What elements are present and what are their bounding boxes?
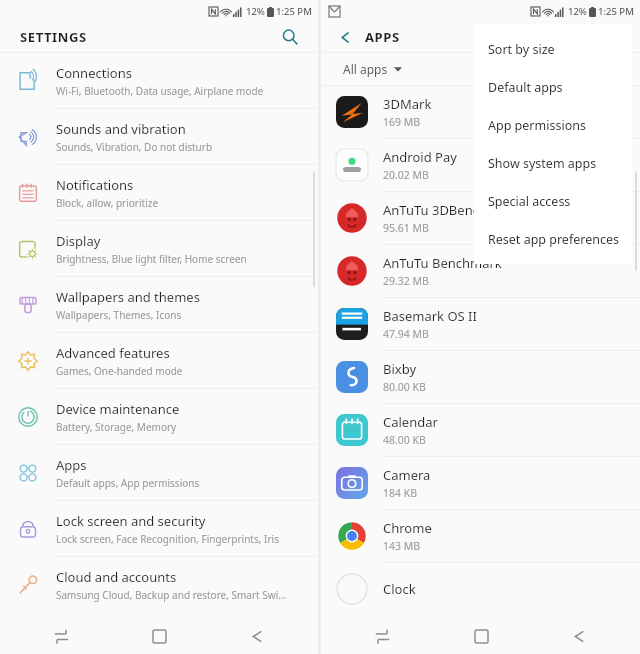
staticText: SETTINGS: [20, 28, 87, 46]
staticText: 12%: [568, 5, 587, 18]
button[interactable]: Reset app preferences: [474, 220, 632, 258]
button[interactable]: Notifications: [0, 165, 318, 220]
button[interactable]: Sort by size: [474, 30, 632, 68]
button[interactable]: All apps: [321, 53, 640, 85]
staticText: All apps: [343, 61, 388, 77]
staticText: App permissions: [488, 117, 586, 134]
staticText: 12%: [246, 5, 265, 18]
staticText: Brightness, Blue light filter, Home scre…: [56, 252, 247, 266]
button[interactable]: Home: [432, 618, 530, 654]
staticText: Show system apps: [488, 155, 597, 172]
button[interactable]: AnTuTu Benchmark: [321, 245, 640, 297]
staticText: 95.61 MB: [383, 221, 429, 235]
staticText: Wallpapers and themes: [56, 288, 200, 306]
button[interactable]: Apps: [0, 445, 318, 500]
button[interactable]: Wallpapers and themes: [0, 277, 318, 332]
staticText: Games, One-handed mode: [56, 364, 183, 378]
staticText: Camera: [383, 466, 431, 484]
button[interactable]: Camera: [321, 457, 640, 509]
button[interactable]: Calendar: [321, 404, 640, 456]
staticText: 169 MB: [383, 115, 421, 129]
button[interactable]: Recents: [333, 618, 432, 654]
staticText: Bixby: [383, 360, 417, 378]
button[interactable]: Connections: [0, 53, 318, 108]
button[interactable]: AnTuTu 3DBench: [321, 192, 640, 244]
staticText: Basemark OS II: [383, 307, 477, 325]
staticText: Calendar: [383, 413, 438, 431]
staticText: AnTuTu Benchmark: [383, 254, 502, 272]
button[interactable]: Lock screen and security: [0, 501, 318, 556]
staticText: Notifications: [56, 176, 134, 194]
button[interactable]: Recents: [12, 618, 110, 654]
staticText: AnTuTu 3DBench: [383, 201, 487, 219]
staticText: APPS: [365, 28, 400, 46]
staticText: Chrome: [383, 519, 432, 537]
button[interactable]: Special access: [474, 182, 632, 220]
staticText: Battery, Storage, Memory: [56, 420, 177, 434]
staticText: Apps: [56, 456, 87, 474]
staticText: Cloud and accounts: [56, 568, 177, 586]
staticText: Wi-Fi, Bluetooth, Data usage, Airplane m…: [56, 84, 264, 98]
staticText: 47.94 MB: [383, 327, 429, 341]
staticText: 80.00 KB: [383, 380, 426, 394]
staticText: Lock screen and security: [56, 512, 206, 530]
staticText: 1:25 PM: [276, 5, 312, 18]
staticText: Clock: [383, 580, 416, 598]
button[interactable]: Search: [276, 23, 304, 51]
button[interactable]: Back: [208, 618, 306, 654]
staticText: 20.02 MB: [383, 168, 429, 182]
button[interactable]: App permissions: [474, 106, 632, 144]
staticText: Samsung Cloud, Backup and restore, Smart…: [56, 588, 287, 602]
button[interactable]: Chrome: [321, 510, 640, 562]
staticText: Sort by size: [488, 41, 555, 58]
button[interactable]: Clock: [321, 563, 640, 615]
button[interactable]: Android Pay: [321, 139, 640, 191]
staticText: Default apps: [488, 79, 563, 96]
button[interactable]: Back: [530, 618, 628, 654]
button[interactable]: Default apps: [474, 68, 632, 106]
button[interactable]: Back: [333, 25, 357, 49]
button[interactable]: Bixby: [321, 351, 640, 403]
button[interactable]: Display: [0, 221, 318, 276]
staticText: Default apps, App permissions: [56, 476, 200, 490]
staticText: Special access: [488, 193, 571, 210]
button[interactable]: Device maintenance: [0, 389, 318, 444]
staticText: Connections: [56, 64, 132, 82]
staticText: 48.00 KB: [383, 433, 426, 447]
staticText: Display: [56, 232, 101, 250]
button[interactable]: Sounds and vibration: [0, 109, 318, 164]
staticText: Reset app preferences: [488, 231, 619, 248]
staticText: 143 MB: [383, 539, 421, 553]
staticText: Sounds and vibration: [56, 120, 186, 138]
button[interactable]: 3DMark: [321, 86, 640, 138]
staticText: 3DMark: [383, 95, 432, 113]
staticText: Device maintenance: [56, 400, 180, 418]
staticText: 1:25 PM: [598, 5, 634, 18]
staticText: Sounds, Vibration, Do not disturb: [56, 140, 213, 154]
staticText: 184 KB: [383, 486, 418, 500]
staticText: Lock screen, Face Recognition, Fingerpri…: [56, 532, 279, 546]
staticText: Android Pay: [383, 148, 457, 166]
button[interactable]: Advanced features: [0, 333, 318, 388]
button[interactable]: Show system apps: [474, 144, 632, 182]
staticText: Block, allow, prioritize: [56, 196, 159, 210]
button[interactable]: Home: [110, 618, 208, 654]
button[interactable]: Basemark OS II: [321, 298, 640, 350]
staticText: 29.32 MB: [383, 274, 429, 288]
staticText: Wallpapers, Themes, Icons: [56, 308, 182, 322]
staticText: Advanced features: [56, 344, 170, 362]
button[interactable]: Cloud and accounts: [0, 557, 318, 612]
